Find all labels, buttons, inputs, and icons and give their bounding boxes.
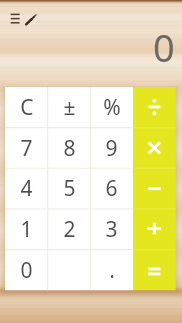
staticText: 9	[105, 134, 118, 163]
button[interactable]: 1	[5, 209, 48, 250]
button[interactable]: ±	[48, 87, 91, 128]
staticText: 2	[63, 215, 76, 244]
staticText: %	[103, 93, 121, 122]
staticText: 8	[63, 134, 76, 163]
button[interactable]: 5	[48, 168, 91, 209]
button[interactable]: Equals	[133, 250, 176, 291]
staticText: 5	[63, 174, 76, 203]
staticText: C	[20, 93, 34, 122]
staticText: 1	[20, 215, 33, 244]
button[interactable]: 7	[5, 128, 48, 169]
button[interactable]: 6	[90, 168, 133, 209]
staticText: 0	[20, 256, 33, 285]
button[interactable]: Divide	[133, 87, 176, 128]
button[interactable]: Plus	[133, 209, 176, 250]
staticText: 7	[20, 134, 33, 163]
button[interactable]: Minus	[133, 168, 176, 209]
button[interactable]: Multiply	[133, 128, 176, 169]
button[interactable]	[48, 250, 91, 291]
button[interactable]: 2	[48, 209, 91, 250]
staticText: ±	[63, 93, 76, 122]
button[interactable]: 9	[90, 128, 133, 169]
button[interactable]: C	[5, 87, 48, 128]
button[interactable]: 8	[48, 128, 91, 169]
staticText: 6	[105, 174, 118, 203]
staticText: 0	[153, 21, 175, 73]
button[interactable]: 3	[90, 209, 133, 250]
staticText: .	[109, 256, 115, 285]
staticText: 3	[105, 215, 118, 244]
button[interactable]: 0	[5, 250, 48, 291]
staticText: 4	[20, 174, 33, 203]
button[interactable]: Menu	[7, 9, 23, 27]
button[interactable]: Edit	[23, 11, 38, 27]
button[interactable]: .	[90, 250, 133, 291]
button[interactable]: 4	[5, 168, 48, 209]
button[interactable]: %	[90, 87, 133, 128]
